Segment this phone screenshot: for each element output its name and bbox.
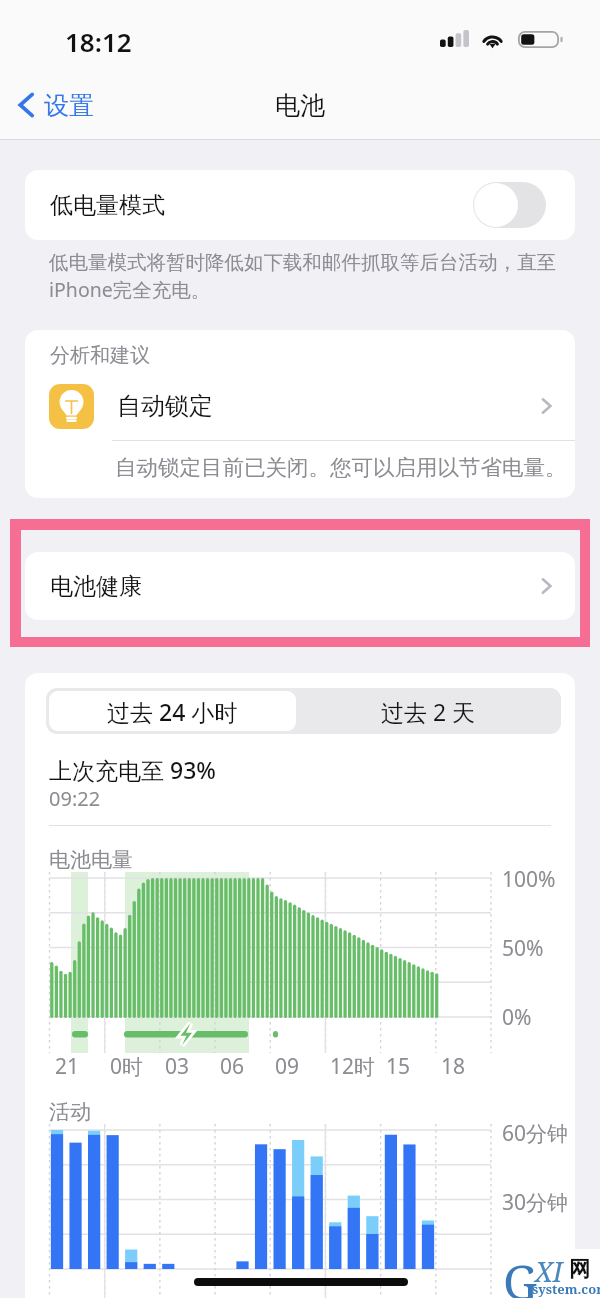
staticText: 自动锁定 (117, 391, 213, 421)
other: Open (540, 394, 553, 418)
staticText: 0% (502, 1003, 532, 1032)
staticText: 低电量模式 (50, 191, 165, 220)
staticText: 18:12 (65, 24, 132, 59)
button[interactable]: 电池健康 (25, 552, 575, 620)
staticText: 过去 2 天 (381, 696, 476, 727)
staticText: 30分钟 (502, 1188, 569, 1217)
staticText: 0时 (110, 1052, 144, 1081)
staticText: 网 (569, 1256, 590, 1282)
button[interactable]: 自动锁定 (25, 372, 575, 440)
staticText: 低电量模式将暂时降低如下载和邮件抓取等后台活动，直至 iPhone完全充电。 (49, 250, 584, 303)
staticText: 设置 (44, 90, 94, 121)
staticText: system.com (532, 1280, 600, 1298)
staticText: 活动 (49, 1099, 91, 1125)
staticText: 过去 24 小时 (107, 696, 238, 727)
staticText: 12时 (330, 1052, 376, 1081)
button[interactable]: 设置 (10, 83, 98, 127)
staticText: 18 (441, 1052, 466, 1081)
staticText: 50% (502, 934, 544, 963)
staticText: 电池 (275, 90, 325, 121)
staticText: 60分钟 (502, 1119, 569, 1148)
staticText: 电池健康 (50, 572, 142, 601)
button[interactable]: 低电量模式 (25, 170, 575, 240)
staticText: 09 (275, 1052, 300, 1081)
staticText: 电池电量 (49, 847, 133, 873)
button[interactable]: 过去 24 小时 (49, 691, 296, 731)
staticText: G (503, 1249, 538, 1298)
staticText: 上次充电至 93% (49, 754, 216, 785)
staticText: 09:22 (49, 785, 101, 812)
button[interactable]: 过去 2 天 (299, 691, 558, 731)
staticText: 自动锁定目前已关闭。您可以启用以节省电量。 (115, 454, 567, 481)
staticText: 06 (220, 1052, 245, 1081)
button[interactable]: Low Power Mode toggle (473, 182, 546, 228)
other: Open (540, 574, 553, 598)
staticText: XI (535, 1253, 563, 1290)
staticText: 03 (165, 1052, 190, 1081)
staticText: 100% (502, 865, 556, 894)
staticText: 15 (386, 1052, 411, 1081)
staticText: 21 (55, 1052, 80, 1081)
staticText: 分析和建议 (50, 343, 150, 368)
